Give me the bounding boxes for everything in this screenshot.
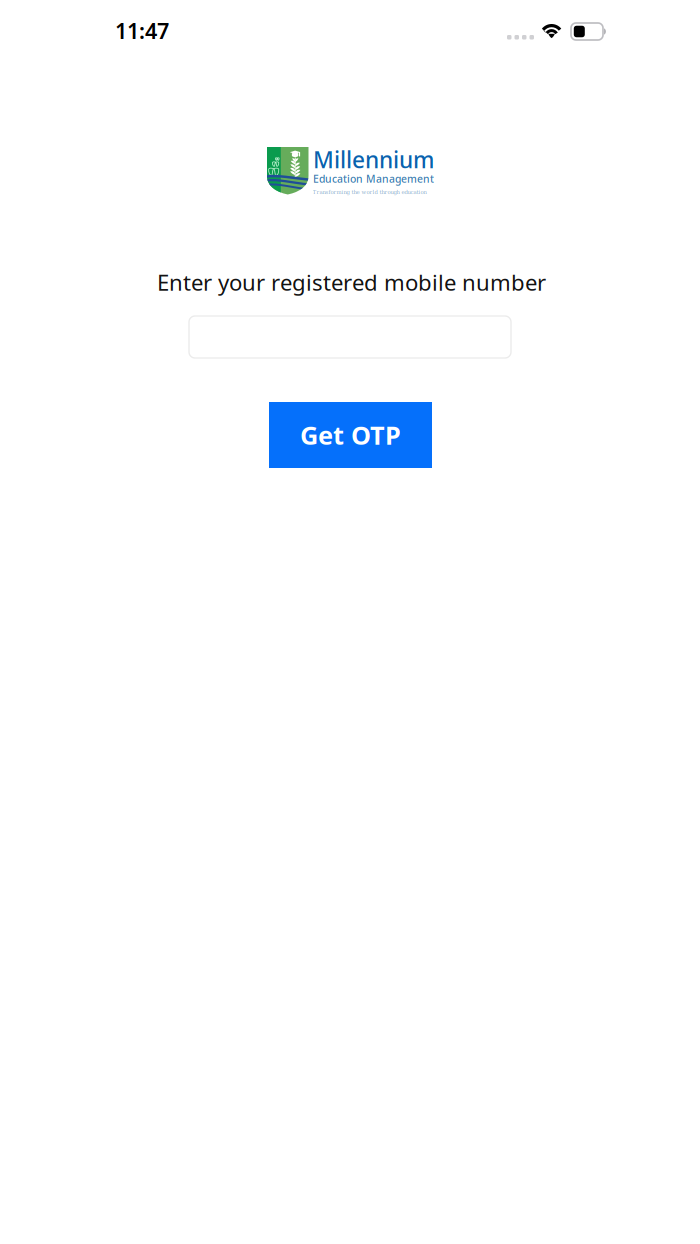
- staticText: 11:47: [115, 16, 169, 45]
- staticText: Enter your registered mobile number: [157, 267, 546, 297]
- staticText: Millennium: [313, 144, 434, 175]
- staticText: Transforming the world through education: [313, 189, 427, 195]
- staticText: Education Management: [313, 172, 434, 186]
- staticText: Get OTP: [300, 418, 401, 452]
- button[interactable]: Registered mobile number: [189, 316, 511, 358]
- button[interactable]: Get OTP: [269, 402, 432, 468]
